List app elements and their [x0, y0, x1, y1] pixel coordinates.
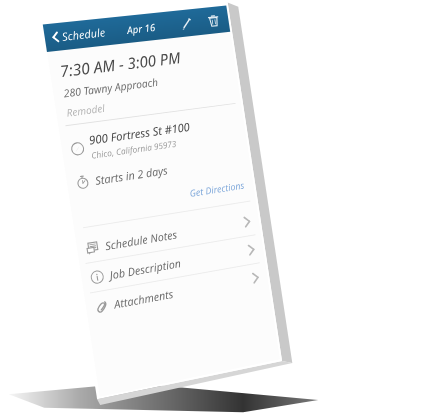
staticText: Apr 16: [126, 20, 157, 37]
staticText: Job Description: [108, 255, 182, 282]
staticText: Get Directions: [189, 179, 245, 200]
staticText: 900 Fortress St #100: [88, 119, 191, 149]
button[interactable]: Attachments: [84, 262, 269, 323]
button[interactable]: 900 Fortress St #100: [60, 110, 247, 168]
button[interactable]: Edit: [175, 13, 197, 34]
button[interactable]: Job Description: [80, 234, 265, 293]
button[interactable]: Schedule Notes: [75, 206, 261, 264]
button[interactable]: Delete: [203, 10, 224, 31]
button[interactable]: Get Directions: [179, 175, 255, 203]
staticText: Starts in 2 days: [94, 162, 169, 188]
staticText: 7:30 AM - 3:00 PM: [58, 46, 182, 81]
staticText: Attachments: [113, 286, 174, 312]
staticText: 280 Tawny Approach: [62, 75, 159, 100]
staticText: Chico, California 95973: [90, 138, 177, 162]
staticText: Schedule Notes: [104, 226, 179, 253]
button[interactable]: Schedule: [48, 21, 109, 48]
staticText: Schedule: [61, 24, 107, 44]
staticText: Remodel: [65, 101, 106, 120]
